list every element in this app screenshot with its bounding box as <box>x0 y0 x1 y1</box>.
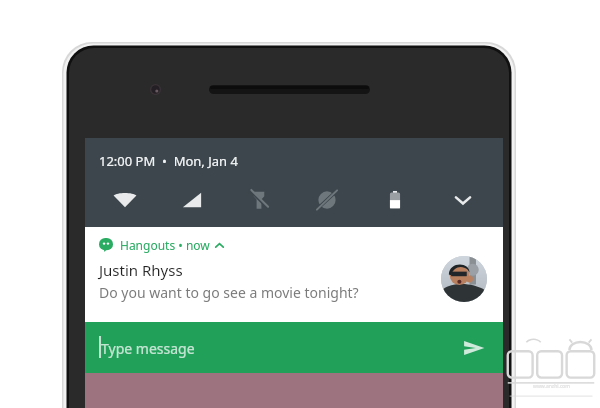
staticText: www.anzhi.com <box>533 383 570 390</box>
staticText: Do you want to go see a movie tonight? <box>99 283 359 302</box>
staticText: Hangouts • now <box>120 237 210 253</box>
button[interactable]: Contact photo <box>441 256 487 302</box>
button[interactable]: Hangouts • now <box>85 227 503 322</box>
button[interactable]: Expand quick settings <box>429 180 497 220</box>
staticText: 12:00 PM • Mon, Jan 4 <box>99 152 238 170</box>
staticText: Type message <box>101 339 195 358</box>
button[interactable]: Mobile signal <box>158 180 225 220</box>
button[interactable]: Wi-Fi <box>91 180 158 220</box>
button[interactable]: Type message <box>85 322 503 373</box>
button[interactable]: Do not disturb <box>293 180 361 220</box>
staticText: Justin Rhyss <box>99 260 183 280</box>
button[interactable]: Battery <box>361 180 429 220</box>
button[interactable]: Flashlight <box>225 180 293 220</box>
button[interactable]: Send <box>457 331 491 365</box>
